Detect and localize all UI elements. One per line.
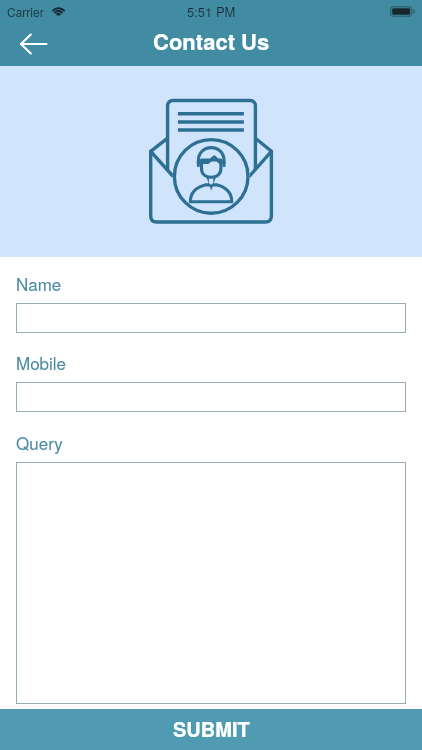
button[interactable] [16, 462, 406, 704]
staticText: Contact Us [153, 25, 270, 57]
button[interactable] [16, 303, 406, 333]
staticText: Query [16, 430, 63, 454]
staticText: Carrier [7, 3, 44, 20]
staticText: 5:51 PM [187, 2, 236, 21]
button[interactable] [16, 382, 406, 412]
staticText: SUBMIT [173, 714, 250, 743]
button[interactable]: Back [11, 22, 55, 66]
button[interactable]: SUBMIT [0, 709, 422, 750]
staticText: Name [16, 271, 62, 295]
staticText: Mobile [16, 350, 67, 374]
